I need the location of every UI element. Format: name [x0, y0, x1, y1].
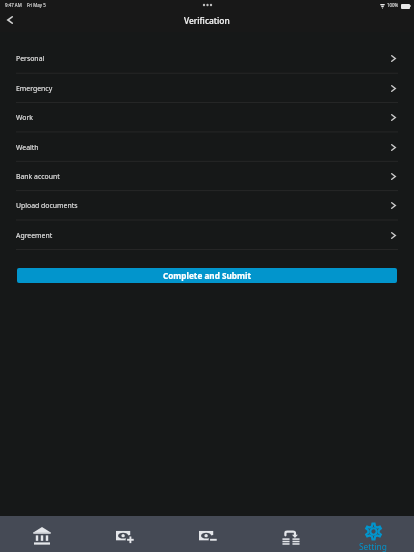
button[interactable]: Transfer	[248, 516, 331, 552]
button[interactable]: Withdraw	[165, 516, 248, 552]
staticText: Wealth	[16, 143, 39, 152]
staticText: 100%	[387, 2, 399, 8]
staticText: 9:47 AM	[5, 2, 22, 8]
button[interactable]: Bank account	[0, 161, 414, 190]
button[interactable]: Upload documents	[0, 190, 414, 219]
button[interactable]: Complete and Submit	[17, 268, 397, 283]
button[interactable]: Back	[0, 11, 19, 32]
staticText: Setting	[359, 541, 387, 552]
staticText: Fri May 5	[27, 2, 46, 8]
staticText: Bank account	[16, 172, 60, 181]
button[interactable]: Setting	[331, 516, 414, 552]
staticText: Personal	[16, 54, 45, 63]
staticText: Complete and Submit	[163, 270, 251, 281]
staticText: Emergency	[16, 84, 53, 93]
button[interactable]: Wealth	[0, 132, 414, 161]
button[interactable]: Work	[0, 102, 414, 131]
staticText: Upload documents	[16, 201, 78, 210]
button[interactable]: Accounts	[0, 516, 82, 552]
button[interactable]: Emergency	[0, 73, 414, 102]
button[interactable]: Personal	[0, 43, 414, 72]
button[interactable]: Agreement	[0, 220, 414, 249]
staticText: Agreement	[16, 231, 53, 240]
button[interactable]: Deposit	[82, 516, 165, 552]
staticText: Work	[16, 113, 33, 122]
staticText: Verification	[184, 15, 230, 26]
